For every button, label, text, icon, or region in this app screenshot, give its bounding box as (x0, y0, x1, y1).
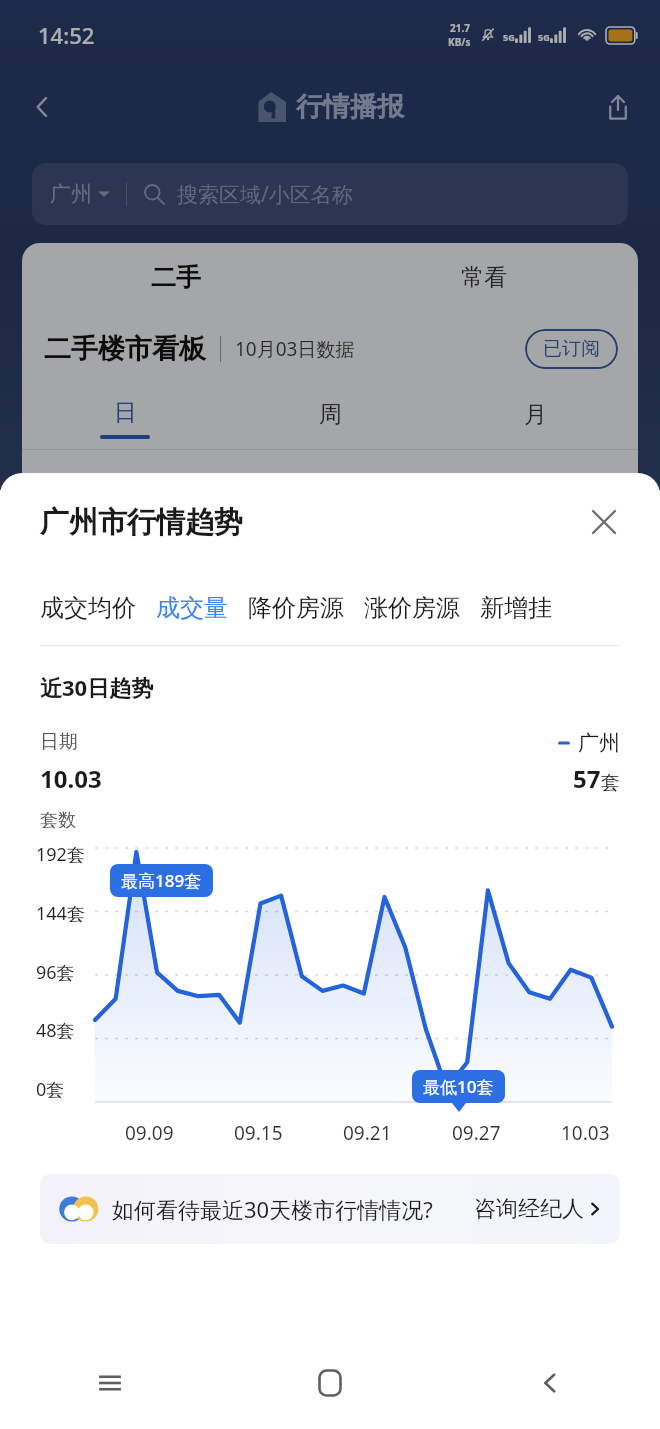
staticText: 新增挂 (480, 593, 552, 623)
button[interactable]: Home (220, 1337, 440, 1429)
button[interactable]: 涨价房源 (364, 593, 480, 623)
staticText: 57 (573, 762, 601, 795)
button[interactable]: Back (440, 1337, 660, 1429)
button[interactable]: 成交量 (156, 593, 248, 623)
button[interactable]: 二手 (22, 243, 330, 311)
staticText: 5G (538, 31, 550, 43)
staticText: 成交量 (156, 593, 228, 623)
staticText: 周 (319, 400, 342, 429)
button[interactable]: 常看 (330, 243, 638, 311)
staticText: 广州 (578, 730, 620, 756)
button[interactable]: 周 (228, 387, 433, 449)
button[interactable]: 月 (433, 387, 638, 449)
staticText: 降价房源 (248, 593, 344, 623)
staticText: 09.21 (343, 1120, 392, 1146)
button[interactable]: 成交均价 (40, 593, 156, 623)
staticText: 月 (524, 400, 547, 429)
staticText: 如何看待最近30天楼市行情情况? (112, 1194, 433, 1224)
staticText: 最高189套 (121, 869, 202, 892)
staticText: 咨询经纪人 (474, 1195, 584, 1223)
button[interactable]: Share (596, 85, 640, 129)
staticText: 10月03日数据 (235, 336, 355, 362)
staticText: 常看 (461, 263, 507, 292)
staticText: 广州 (50, 181, 92, 207)
staticText: 09.09 (125, 1120, 174, 1146)
button[interactable]: Recents (0, 1337, 220, 1429)
staticText: 14:52 (38, 20, 95, 50)
staticText: 96套 (36, 960, 75, 985)
staticText: 21.7 (450, 21, 470, 35)
staticText: 09.27 (452, 1120, 501, 1146)
staticText: 日 (114, 398, 137, 427)
button[interactable]: 新增挂 (480, 593, 572, 623)
button[interactable]: 如何看待最近30天楼市行情情况? (40, 1174, 620, 1244)
staticText: KB/s (448, 35, 471, 49)
staticText: 10.03 (561, 1120, 610, 1146)
staticText: 192套 (36, 842, 85, 867)
staticText: 09.15 (234, 1120, 283, 1146)
button[interactable]: 已订阅 (525, 329, 618, 369)
staticText: 行情播报 (296, 90, 404, 124)
staticText: 日期 (40, 730, 78, 754)
button[interactable]: 日 (22, 387, 228, 449)
staticText: 近30日趋势 (40, 672, 154, 702)
staticText: 二手楼市看板 (44, 332, 206, 366)
staticText: 套 (601, 771, 620, 795)
staticText: 广州市行情趋势 (40, 504, 243, 541)
staticText: 5G (503, 31, 515, 43)
staticText: 二手 (151, 262, 201, 293)
button[interactable]: 降价房源 (248, 593, 364, 623)
staticText: 10.03 (40, 762, 102, 795)
button[interactable]: Back (20, 85, 64, 129)
button[interactable]: 广州 (32, 163, 628, 225)
staticText: 已订阅 (543, 337, 600, 361)
staticText: 0套 (36, 1077, 65, 1102)
staticText: 144套 (36, 901, 85, 926)
staticText: 成交均价 (40, 593, 136, 623)
button[interactable]: Close (580, 498, 628, 546)
staticText: 涨价房源 (364, 593, 460, 623)
staticText: 套数 (40, 809, 76, 832)
staticText: 搜索区域/小区名称 (177, 180, 353, 209)
staticText: 48套 (36, 1018, 75, 1043)
staticText: 最低10套 (423, 1075, 494, 1098)
